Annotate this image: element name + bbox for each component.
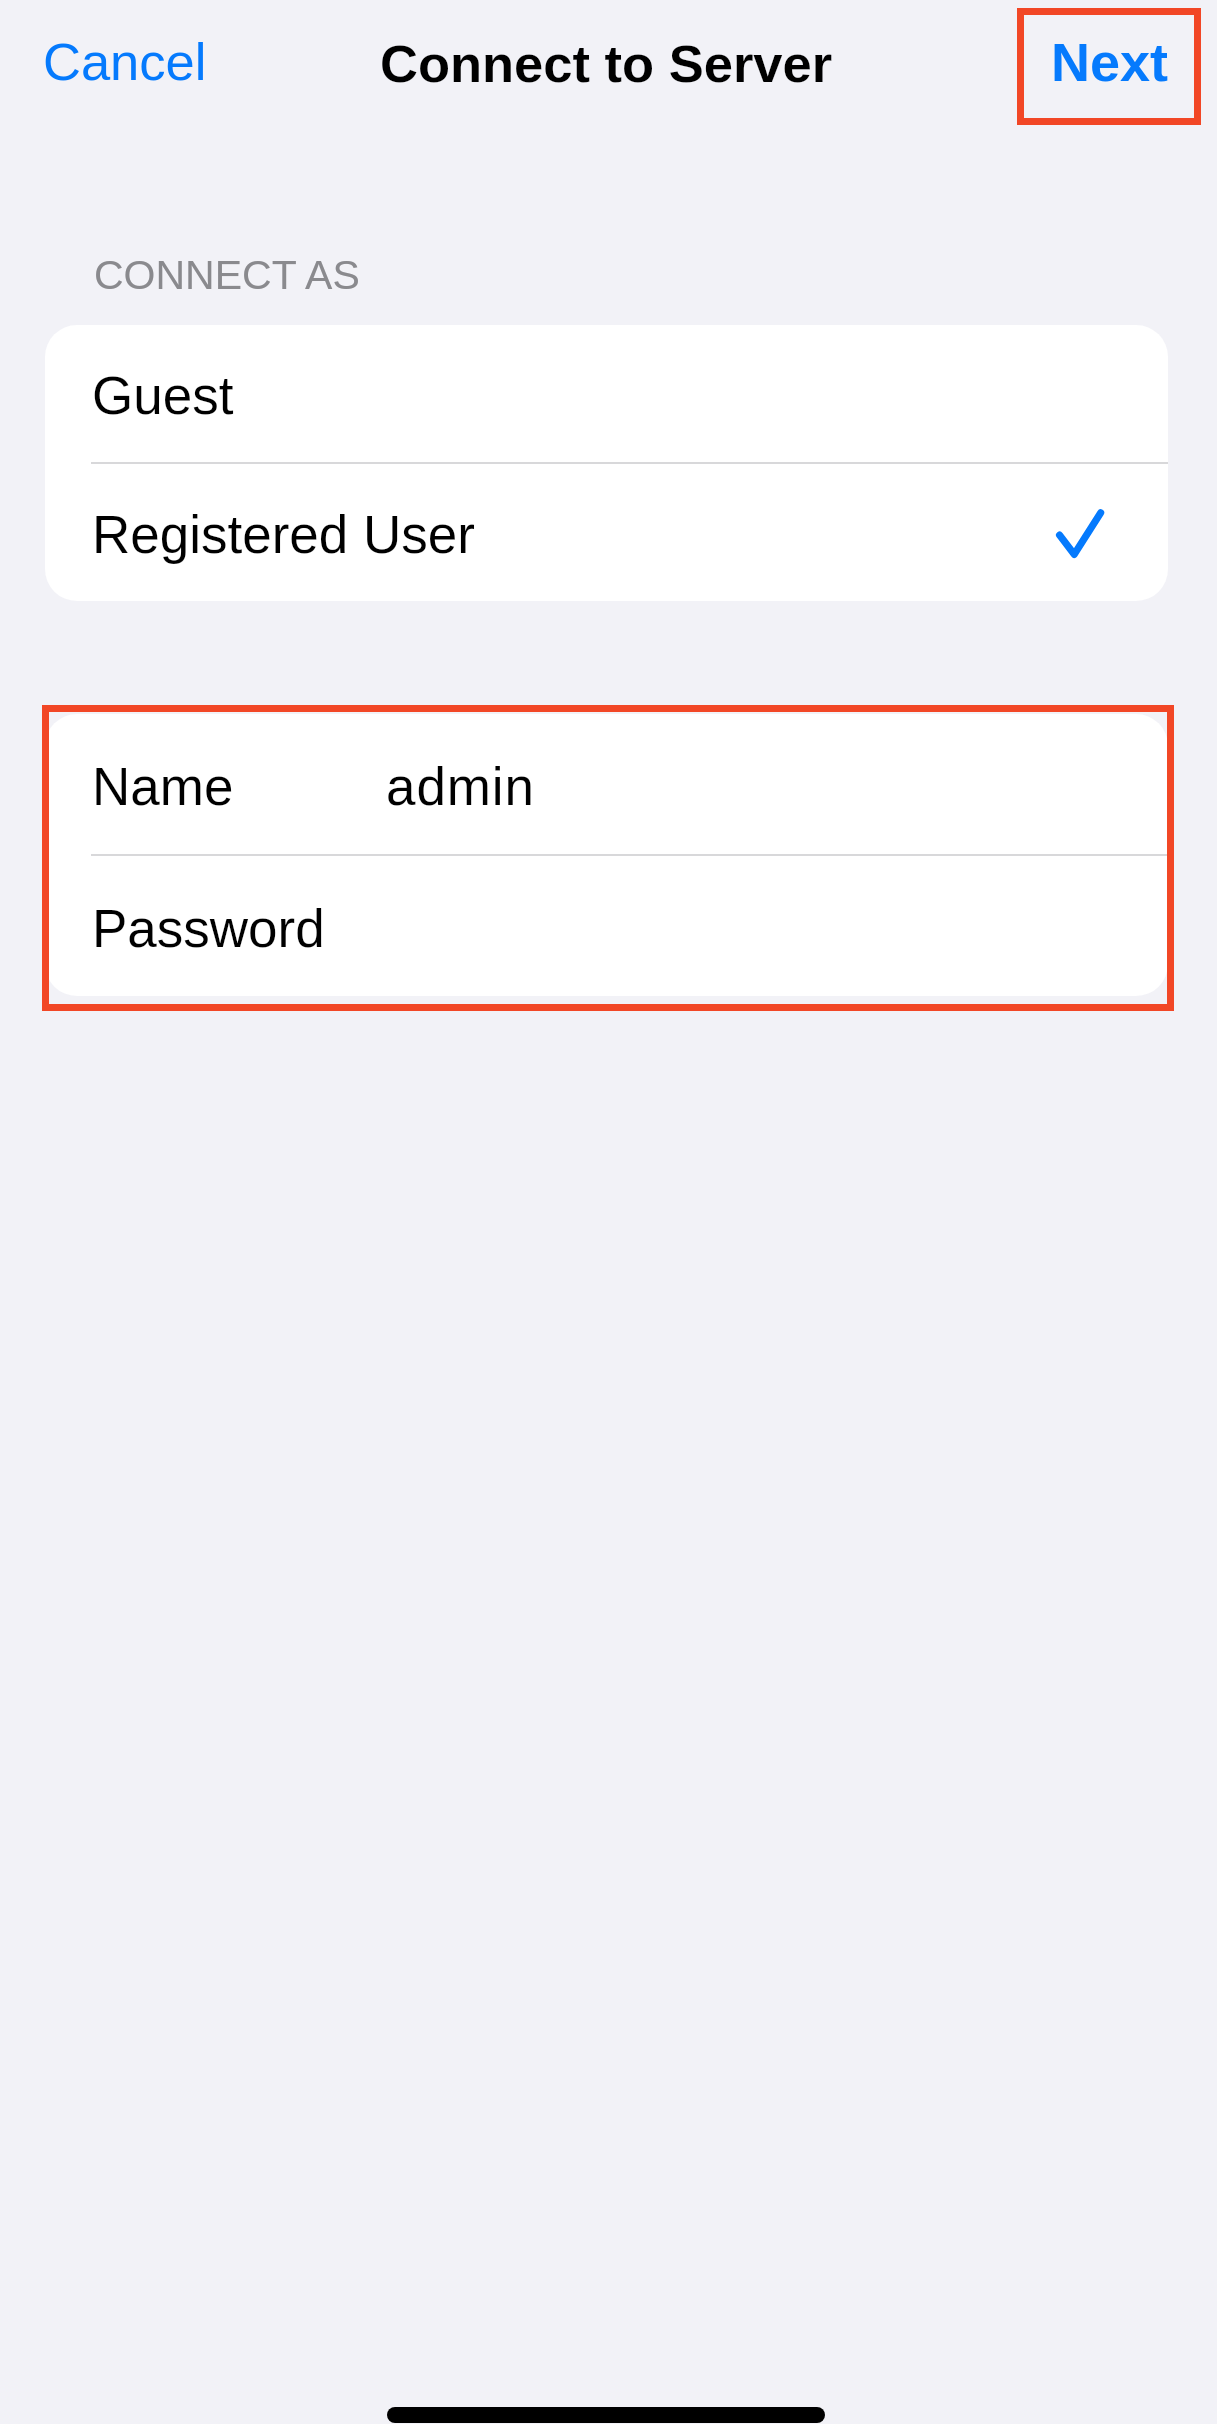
button[interactable]: Name: [45, 714, 1168, 854]
staticText: admin: [386, 757, 535, 816]
staticText: Connect to Server: [380, 34, 833, 93]
staticText: Next: [1051, 32, 1169, 92]
staticText: Guest: [92, 366, 234, 425]
staticText: Password: [92, 899, 325, 958]
other: Selected: [1056, 509, 1104, 557]
staticText: Cancel: [43, 32, 207, 91]
button[interactable]: Registered User: [45, 464, 1168, 601]
staticText: Registered User: [92, 505, 475, 564]
button[interactable]: Cancel: [41, 20, 209, 103]
button[interactable]: Password: [45, 856, 1168, 996]
staticText: CONNECT AS: [94, 252, 360, 298]
button[interactable]: Guest: [45, 325, 1168, 462]
button[interactable]: Next: [1049, 20, 1171, 104]
staticText: Name: [92, 757, 234, 816]
